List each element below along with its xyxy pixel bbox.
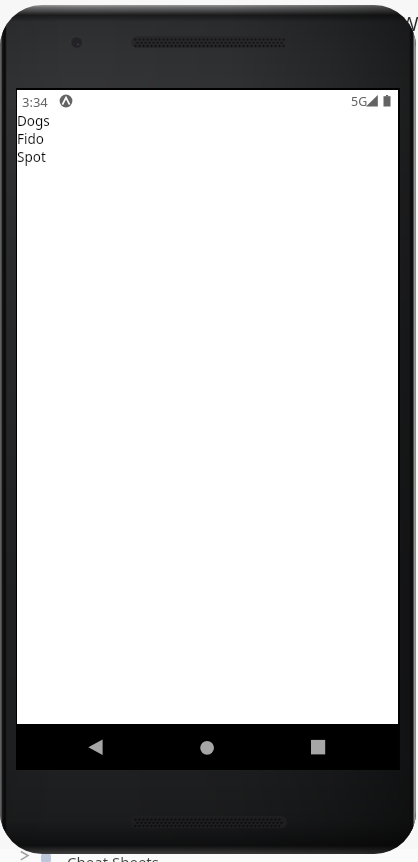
staticText: 3:34 [22, 93, 48, 111]
button[interactable]: Fido [17, 130, 398, 148]
button[interactable]: Recents [303, 732, 334, 763]
staticText: Fido [17, 130, 44, 148]
staticText: Dogs [17, 112, 50, 130]
staticText: 5G [351, 93, 368, 110]
button[interactable]: Spot [17, 148, 398, 166]
staticText: Cheat Sheets [67, 852, 159, 862]
button[interactable]: Dogs [17, 112, 398, 130]
button[interactable]: Back [80, 732, 111, 763]
staticText: Spot [17, 148, 46, 166]
button[interactable]: Home [192, 732, 223, 763]
staticText: W [400, 10, 418, 37]
